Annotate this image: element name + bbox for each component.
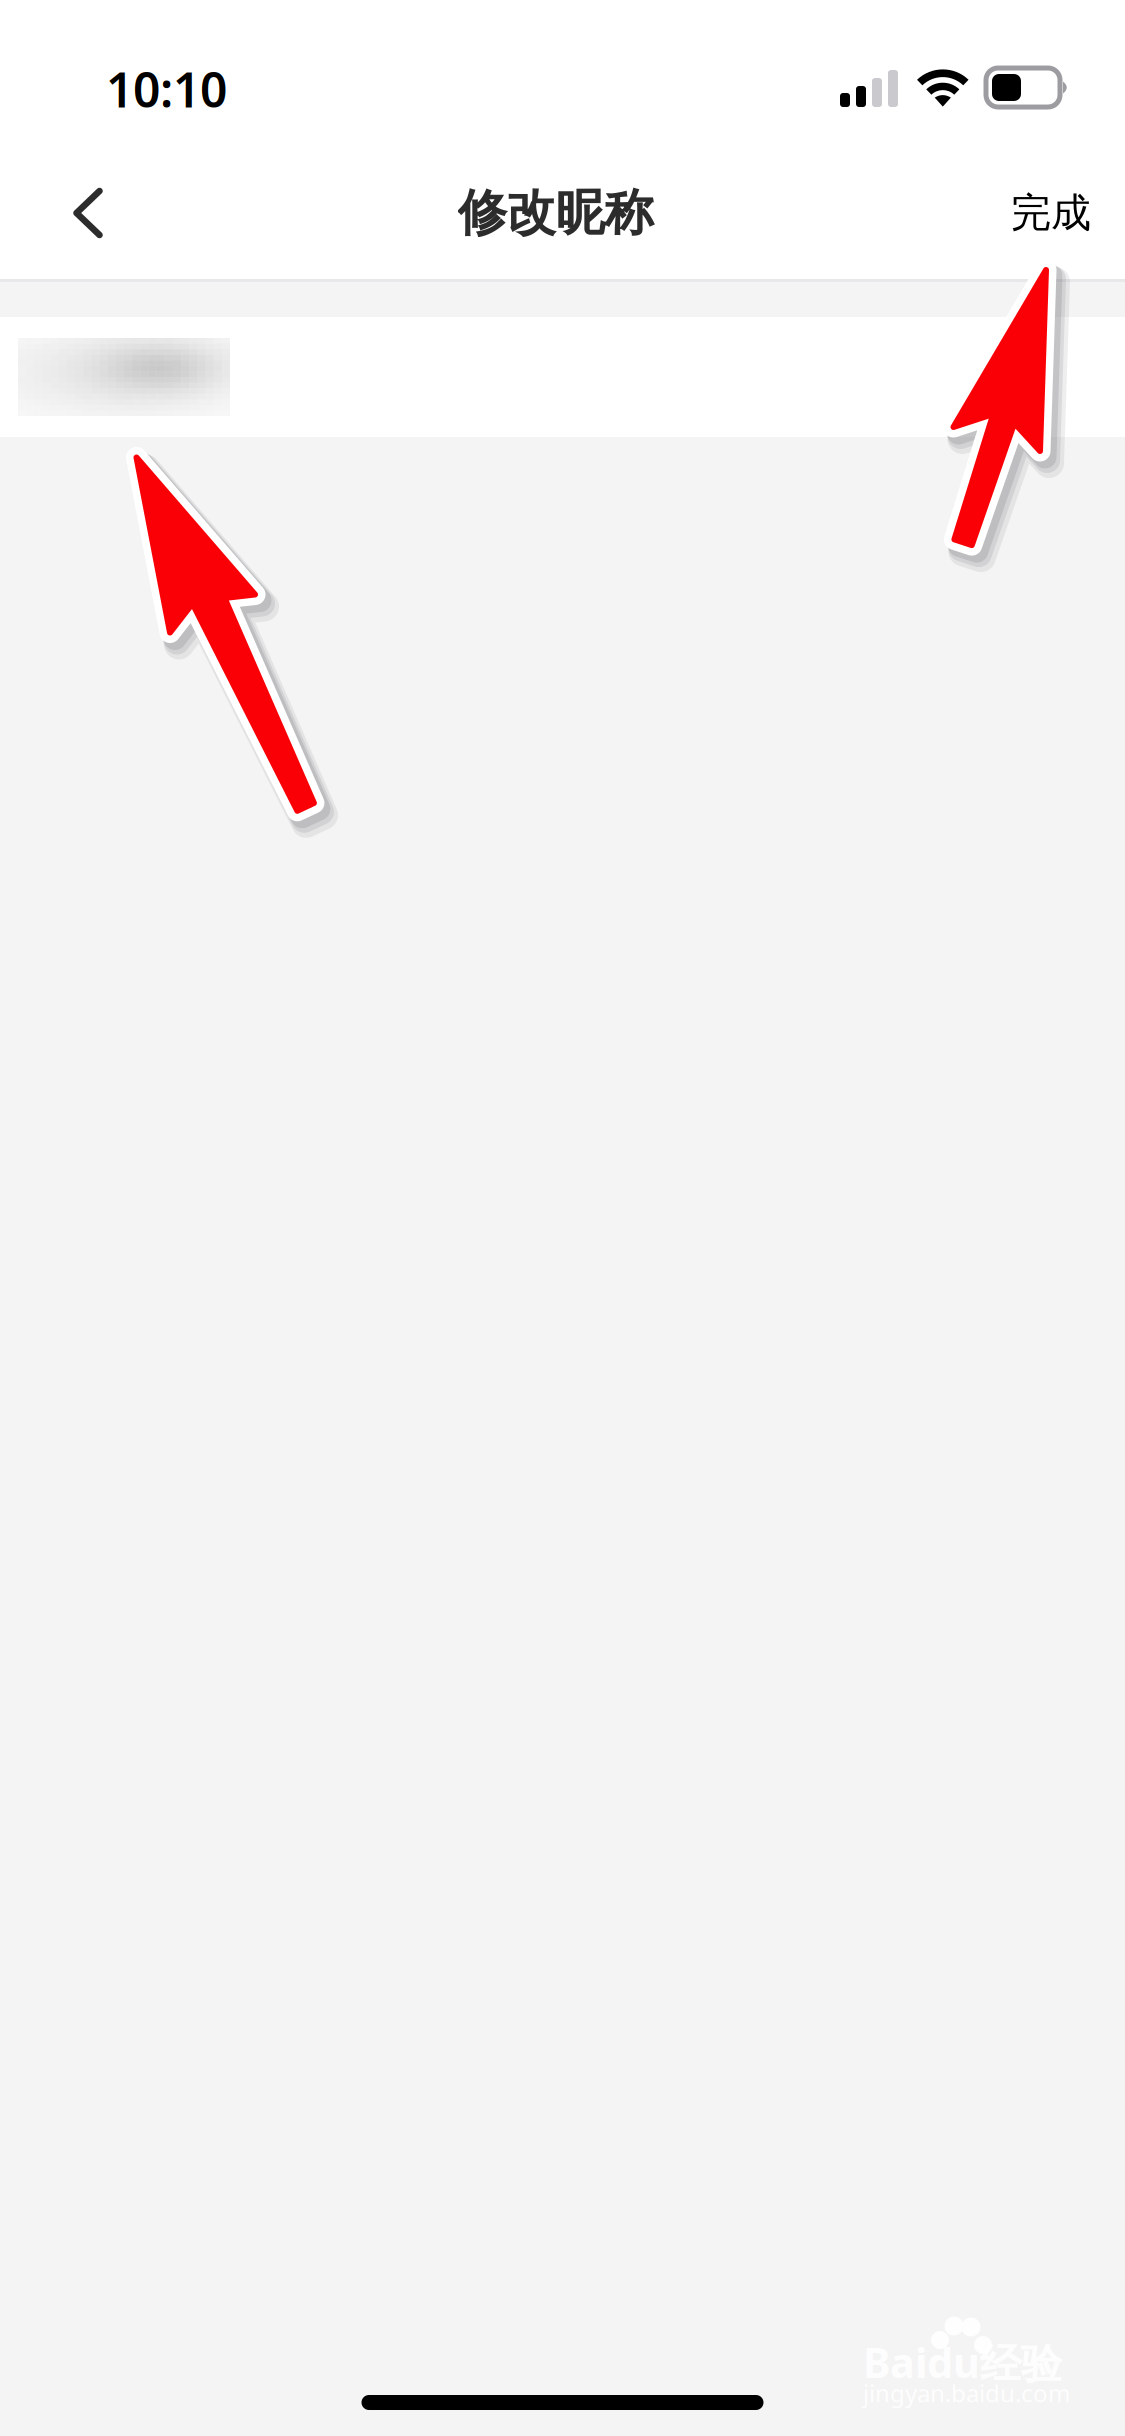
button[interactable]: 完成 <box>981 151 1121 275</box>
staticText: jingyan.baidu.com <box>863 2377 1070 2409</box>
staticText: 完成 <box>1011 188 1091 237</box>
staticText: 10:10 <box>106 57 227 121</box>
staticText: Baidu经验 <box>863 2334 1062 2389</box>
staticText: 修改昵称 <box>457 183 653 243</box>
button[interactable]: 返回 <box>33 151 143 275</box>
